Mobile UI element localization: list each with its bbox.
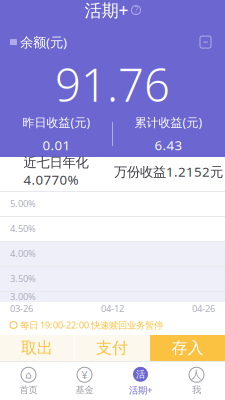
staticText: 91.76 bbox=[55, 54, 170, 114]
staticText: ¥ bbox=[81, 368, 87, 382]
button[interactable]: 取出 bbox=[0, 335, 74, 361]
staticText: 03-26 bbox=[10, 302, 33, 315]
staticText: 基金 bbox=[75, 384, 93, 396]
button[interactable]: 近七日年化4.0770% bbox=[0, 157, 112, 191]
staticText: 存入 bbox=[171, 338, 203, 358]
button[interactable]: 编辑 bbox=[196, 32, 215, 52]
staticText: 4.50% bbox=[10, 222, 36, 235]
staticText: 取出 bbox=[21, 338, 53, 358]
staticText: 3.00% bbox=[10, 290, 36, 303]
staticText: 累计收益(元) bbox=[134, 114, 202, 130]
staticText: ? bbox=[134, 5, 137, 15]
staticText: 万份收益1.2152元 bbox=[114, 163, 223, 180]
staticText: 首页 bbox=[19, 384, 37, 396]
button[interactable]: ¥ bbox=[56, 362, 112, 400]
staticText: 昨日收益(元) bbox=[22, 114, 90, 130]
staticText: 我 bbox=[192, 384, 201, 396]
button[interactable]: 支付 bbox=[75, 335, 149, 361]
button[interactable]: 万份收益1.2152元 bbox=[112, 157, 225, 191]
staticText: 支付 bbox=[96, 338, 128, 358]
staticText: 活期+ bbox=[129, 384, 152, 396]
staticText: 6.43 bbox=[154, 136, 182, 154]
staticText: 活期+ bbox=[84, 0, 128, 22]
staticText: 0.01 bbox=[42, 136, 70, 154]
staticText: 余额(元) bbox=[20, 33, 67, 51]
staticText: 04-26 bbox=[192, 302, 215, 315]
staticText: 近七日年化4.0770% bbox=[23, 154, 88, 189]
staticText: 每日 19:00-22:00 快速赎回业务暂停 bbox=[20, 319, 163, 331]
staticText: 4.00% bbox=[10, 247, 36, 260]
staticText: 活 bbox=[136, 369, 145, 380]
staticText: 人 bbox=[191, 368, 202, 381]
staticText: 5.00% bbox=[10, 197, 36, 210]
button[interactable]: 活 bbox=[112, 362, 168, 400]
staticText: 3.50% bbox=[10, 272, 36, 285]
button[interactable]: 存入 bbox=[150, 335, 225, 361]
staticText: 04-12 bbox=[101, 302, 124, 315]
button[interactable]: ⌂ bbox=[0, 362, 56, 400]
staticText: ⌂ bbox=[25, 369, 32, 381]
button[interactable]: 人 bbox=[168, 362, 224, 400]
